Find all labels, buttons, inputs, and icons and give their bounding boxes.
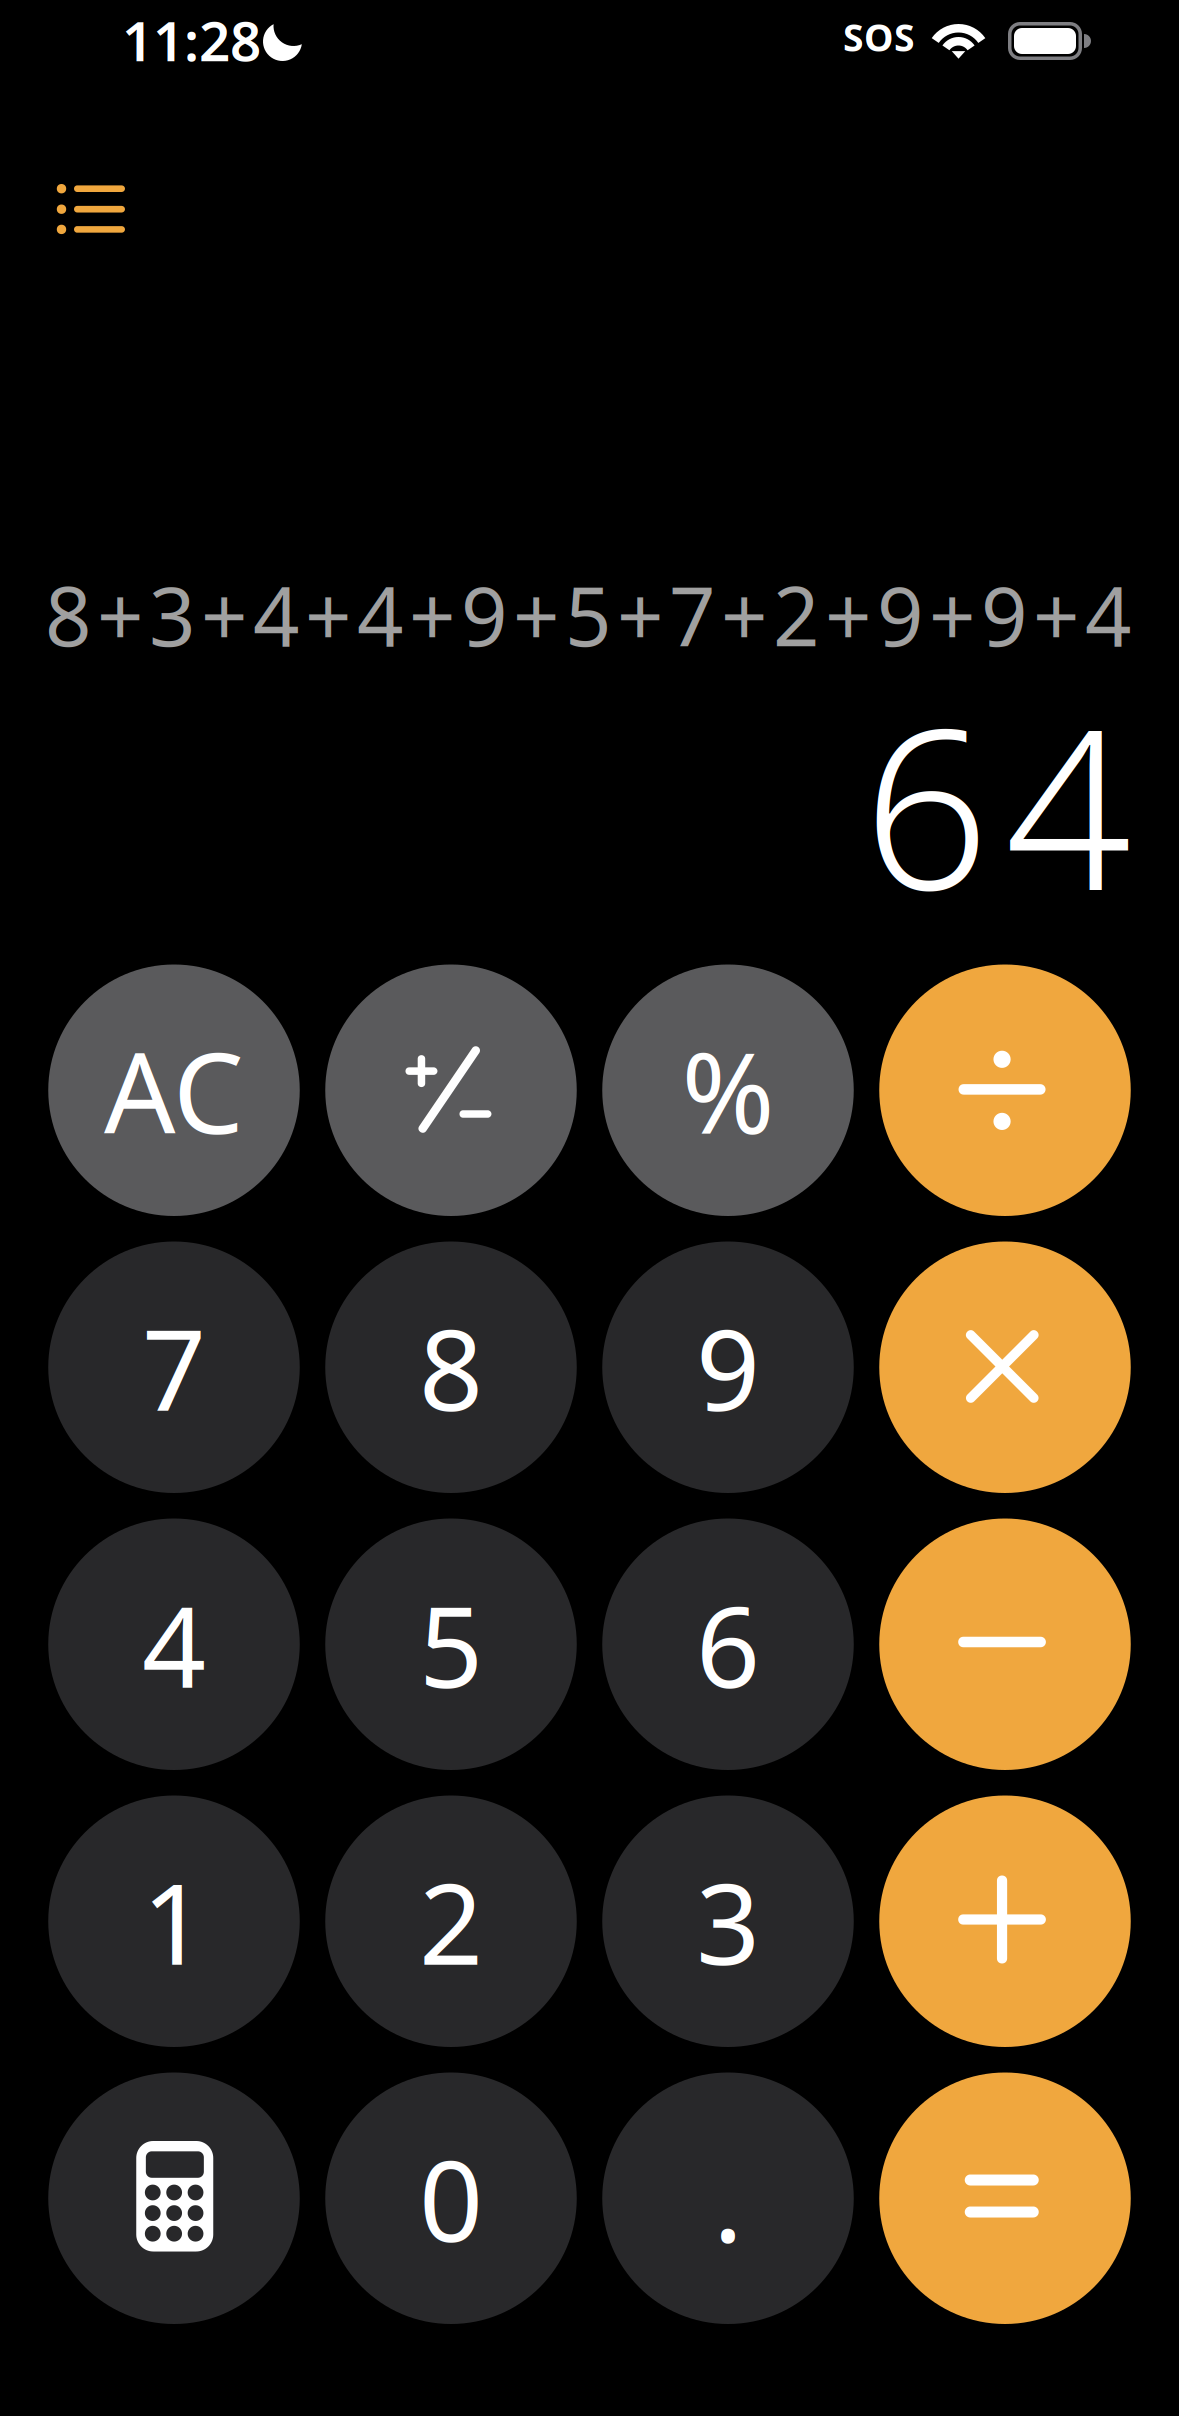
staticText: . bbox=[713, 2124, 743, 2273]
staticText: 6 bbox=[696, 1570, 760, 1719]
staticText: 4 bbox=[142, 1570, 206, 1719]
button[interactable]: 3 bbox=[602, 1795, 854, 2047]
button[interactable]: Plus minus bbox=[325, 964, 577, 1216]
button[interactable]: % bbox=[602, 964, 854, 1216]
button[interactable]: 1 bbox=[48, 1795, 300, 2047]
button[interactable]: 9 bbox=[602, 1241, 854, 1493]
button[interactable]: AC bbox=[48, 964, 300, 1216]
button[interactable]: Equals bbox=[879, 2072, 1131, 2324]
button[interactable]: 8 bbox=[325, 1241, 577, 1493]
staticText: 11:28 bbox=[122, 4, 261, 76]
button[interactable]: Divide bbox=[879, 964, 1131, 1216]
button[interactable]: Minus bbox=[879, 1518, 1131, 1770]
staticText: 9 bbox=[696, 1293, 760, 1442]
staticText: AC bbox=[104, 1016, 244, 1165]
staticText: 1 bbox=[142, 1847, 206, 1996]
staticText: % bbox=[681, 1016, 774, 1165]
button[interactable]: 4 bbox=[48, 1518, 300, 1770]
button[interactable]: Multiply bbox=[879, 1241, 1131, 1493]
staticText: 64 bbox=[863, 657, 1131, 950]
staticText: 8+3+4+4+9+5+7+2+9+9+4 bbox=[45, 561, 1132, 669]
staticText: SOS bbox=[843, 12, 915, 62]
button[interactable]: 0 bbox=[325, 2072, 577, 2324]
button[interactable]: 7 bbox=[48, 1241, 300, 1493]
button[interactable]: Plus bbox=[879, 1795, 1131, 2047]
button[interactable]: 5 bbox=[325, 1518, 577, 1770]
staticText: 8 bbox=[419, 1293, 483, 1442]
staticText: 7 bbox=[142, 1293, 206, 1442]
button[interactable]: Calculator history bbox=[34, 154, 150, 264]
staticText: 5 bbox=[419, 1570, 483, 1719]
button[interactable]: Basic calculator bbox=[48, 2072, 300, 2324]
staticText: 2 bbox=[419, 1847, 483, 1996]
button[interactable]: 2 bbox=[325, 1795, 577, 2047]
button[interactable]: 6 bbox=[602, 1518, 854, 1770]
staticText: 0 bbox=[419, 2124, 483, 2273]
staticText: 3 bbox=[696, 1847, 760, 1996]
button[interactable]: . bbox=[602, 2072, 854, 2324]
